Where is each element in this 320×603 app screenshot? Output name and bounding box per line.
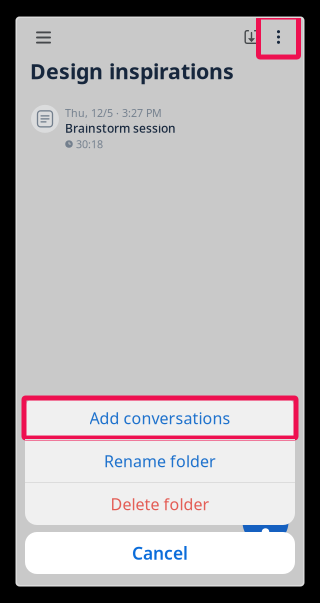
staticText: 30:18 — [76, 137, 103, 151]
staticText: Rename folder — [104, 450, 216, 472]
staticText: Add conversations — [89, 407, 230, 429]
button[interactable]: Menu — [24, 20, 62, 54]
staticText: Design inspirations — [30, 57, 234, 85]
staticText: Brainstorm session — [65, 120, 176, 136]
button[interactable]: Rename folder — [25, 440, 295, 482]
staticText: Delete folder — [110, 493, 209, 515]
button[interactable]: Add conversations — [25, 397, 295, 439]
button[interactable]: More options — [258, 17, 298, 57]
button[interactable]: Thu, 12/5 · 3:27 PM — [17, 105, 303, 151]
button[interactable]: New conversation — [242, 499, 288, 545]
button[interactable]: Download — [234, 20, 268, 54]
staticText: Cancel — [132, 541, 188, 564]
staticText: Thu, 12/5 · 3:27 PM — [65, 106, 162, 120]
button[interactable]: Delete folder — [25, 483, 295, 525]
button[interactable]: Cancel — [25, 532, 295, 574]
